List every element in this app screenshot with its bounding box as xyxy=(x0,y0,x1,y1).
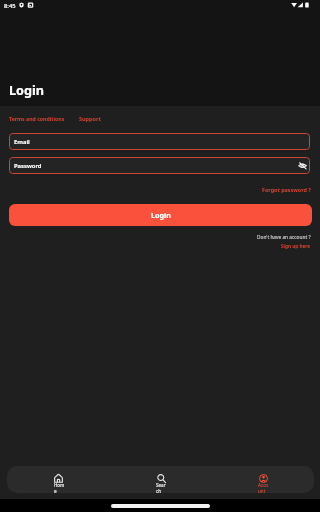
staticText: 8:45 xyxy=(4,2,16,10)
staticText: Login xyxy=(9,81,45,98)
button[interactable]: Support xyxy=(79,115,101,122)
staticText: Sear ch xyxy=(156,482,166,493)
staticText: Email xyxy=(14,138,30,146)
button[interactable]: Email xyxy=(9,133,310,150)
button[interactable]: Show password xyxy=(298,161,307,170)
button[interactable]: Forgot password ? xyxy=(262,186,311,193)
button[interactable]: Login xyxy=(9,204,312,226)
staticText: Password xyxy=(14,162,42,170)
button[interactable]: Acco unt xyxy=(212,466,314,493)
staticText: Forgot password ? xyxy=(262,186,311,193)
button[interactable]: Sign up here xyxy=(281,243,311,249)
staticText: Terms and conditions xyxy=(9,115,65,122)
staticText: Don't have an account ? xyxy=(257,234,311,241)
staticText: Sign up here xyxy=(281,243,311,249)
staticText: Support xyxy=(79,115,101,122)
button[interactable]: Sear ch xyxy=(110,466,212,493)
button[interactable]: Password xyxy=(9,157,310,174)
button[interactable]: Terms and conditions xyxy=(9,115,65,122)
staticText: Hom e xyxy=(54,482,64,493)
staticText: Acco unt xyxy=(258,482,268,493)
button[interactable]: Hom e xyxy=(7,466,110,493)
staticText: Login xyxy=(151,210,171,220)
